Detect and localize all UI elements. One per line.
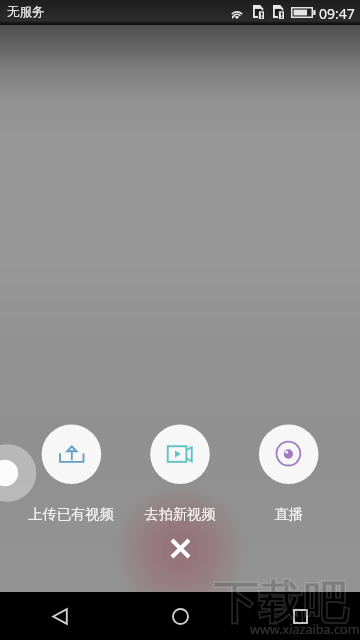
staticText: 下载吧: [213, 575, 348, 632]
staticText: 上传已有视频: [17, 505, 125, 523]
staticText: www.xiazaiba.com: [250, 621, 360, 638]
button[interactable]: 直播: [235, 424, 343, 523]
staticText: 直播: [235, 505, 343, 523]
staticText: 去拍新视频: [126, 505, 234, 523]
staticText: 09:47: [319, 4, 355, 23]
button[interactable]: 去拍新视频: [126, 424, 234, 523]
button[interactable]: Back: [0, 592, 120, 640]
staticText: 无服务: [7, 4, 45, 20]
button[interactable]: 上传已有视频: [17, 424, 125, 523]
button[interactable]: Close: [156, 524, 204, 572]
button[interactable]: Home: [120, 592, 240, 640]
staticText: 下载吧: [213, 575, 348, 632]
button[interactable]: Recent apps: [240, 592, 360, 640]
